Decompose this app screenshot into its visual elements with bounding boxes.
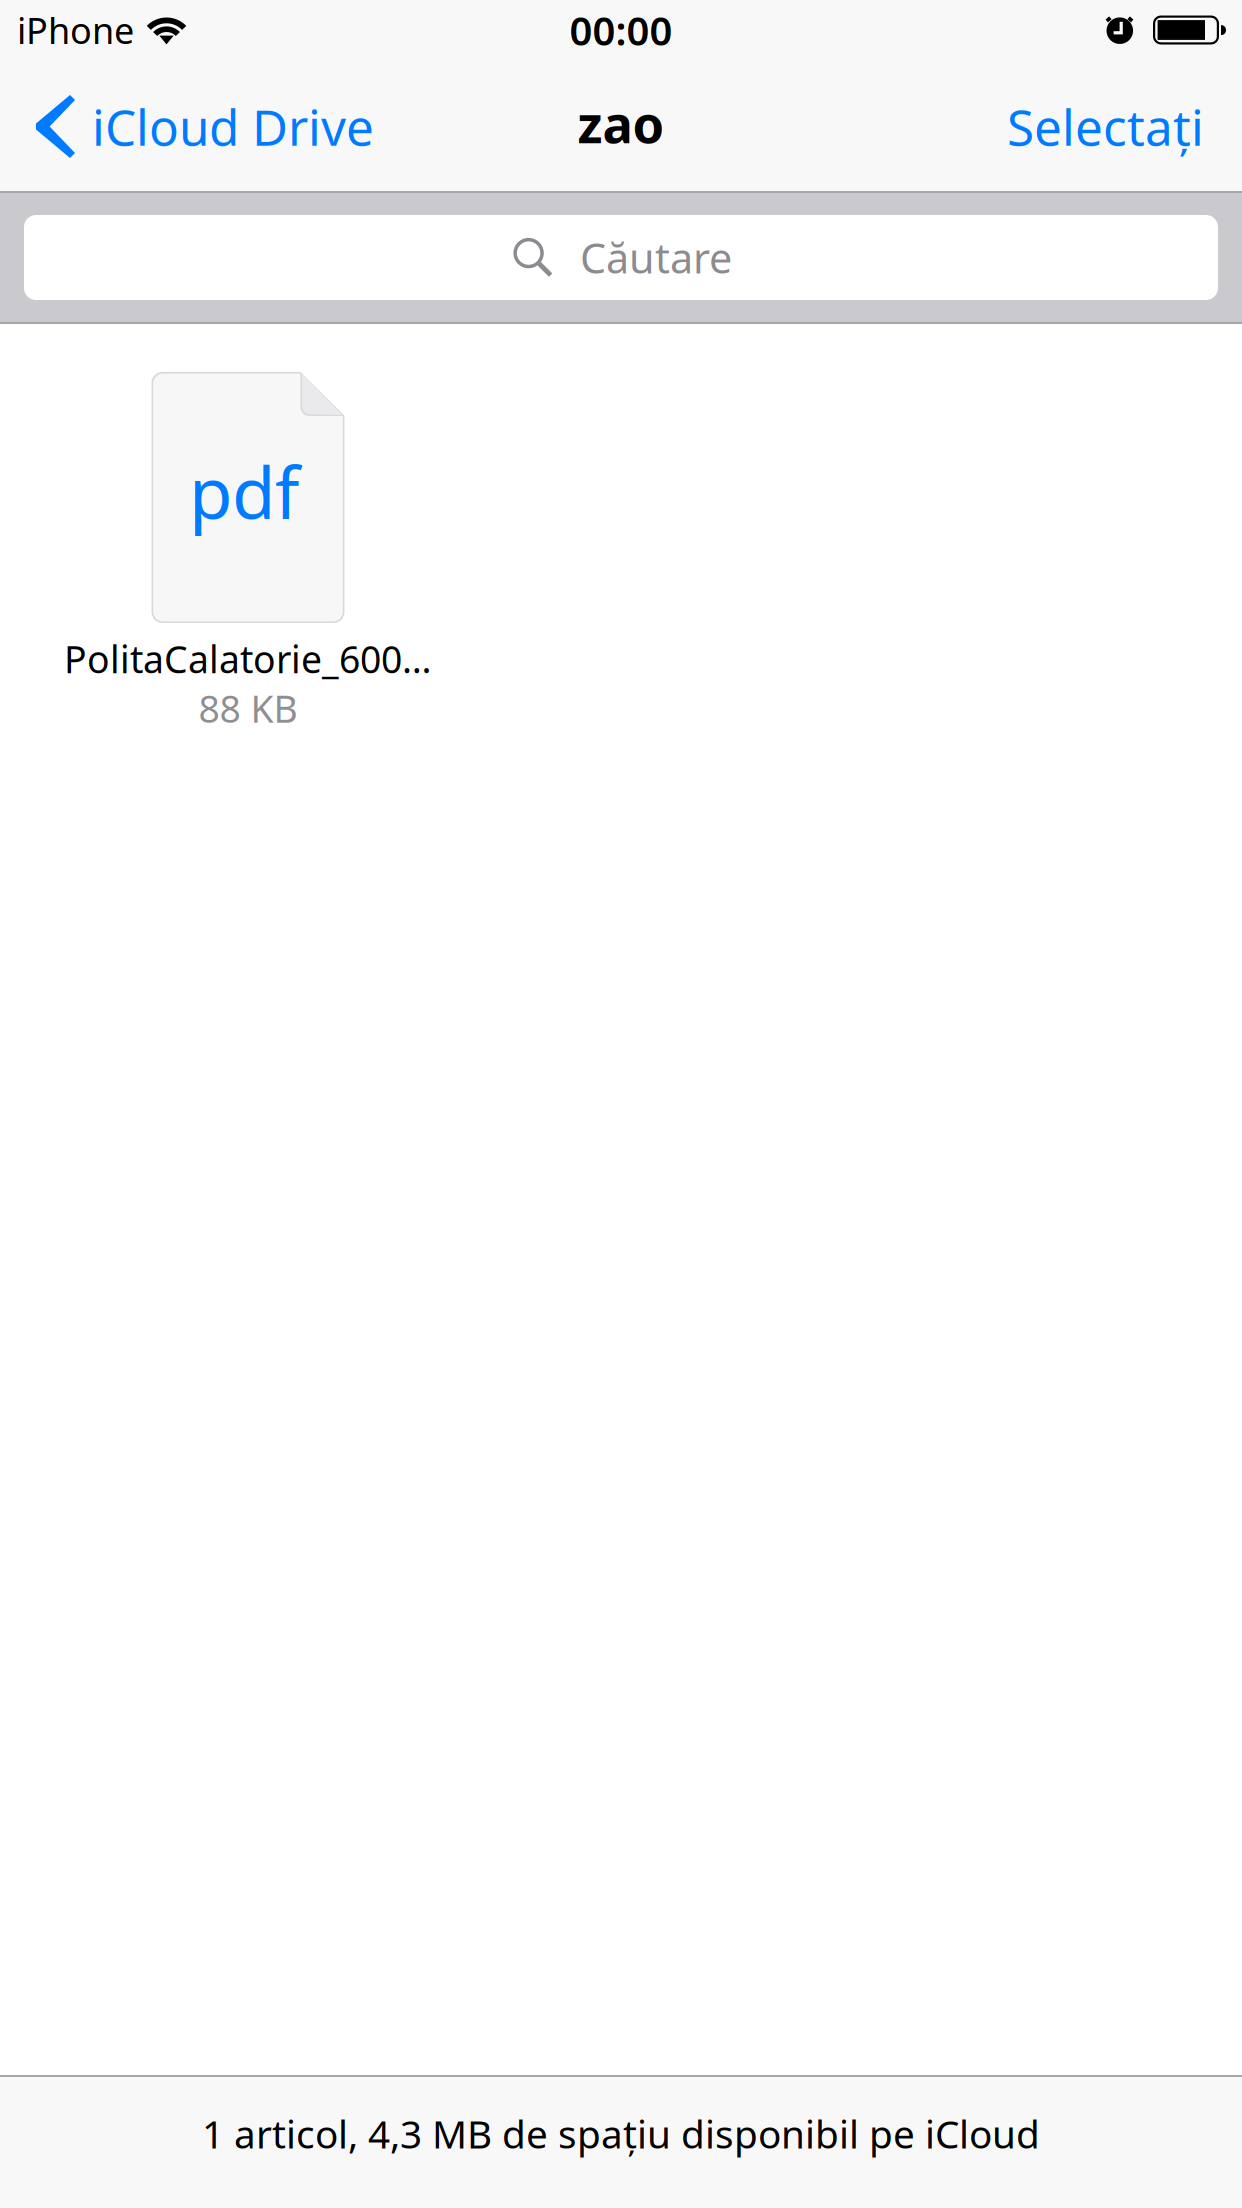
staticText: iPhone bbox=[17, 6, 134, 54]
button[interactable]: Căutare bbox=[24, 215, 1218, 300]
staticText: 1 articol, 4,3 MB de spațiu disponibil p… bbox=[202, 2108, 1040, 2159]
staticText: 88 KB bbox=[198, 684, 297, 733]
staticText: PolitaCalatorie_600… bbox=[64, 634, 432, 684]
staticText: Selectați bbox=[1007, 94, 1204, 159]
button[interactable]: Selectați bbox=[983, 60, 1242, 193]
staticText: Căutare bbox=[580, 230, 732, 285]
button[interactable]: pdf bbox=[59, 372, 437, 762]
staticText: pdf bbox=[189, 445, 299, 538]
staticText: zao bbox=[577, 90, 664, 157]
staticText: 00:00 bbox=[569, 3, 672, 56]
staticText: iCloud Drive bbox=[92, 94, 374, 159]
button[interactable]: iCloud Drive bbox=[0, 60, 394, 193]
